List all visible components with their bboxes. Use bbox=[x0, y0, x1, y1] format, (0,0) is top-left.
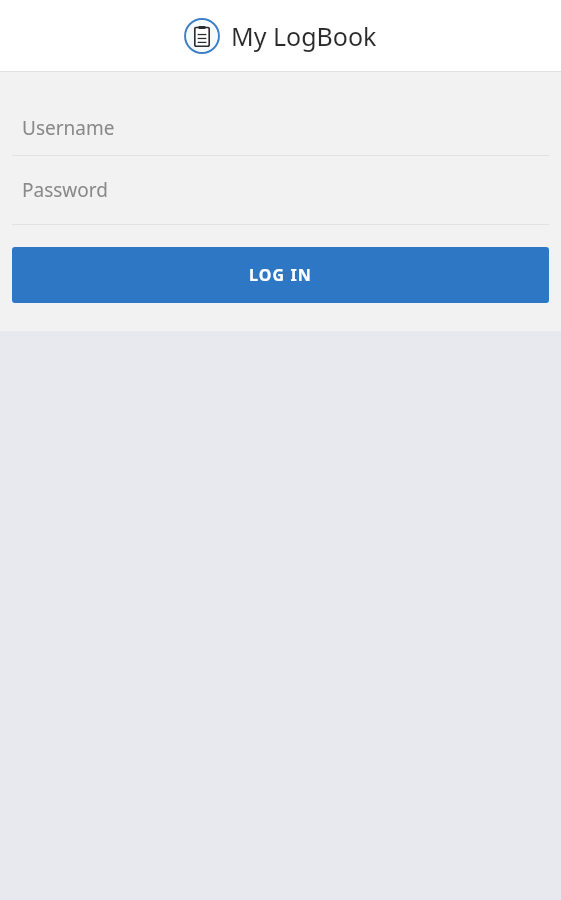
staticText: Password bbox=[22, 177, 108, 203]
staticText: LOG IN bbox=[249, 264, 312, 286]
staticText: My LogBook bbox=[231, 19, 377, 53]
button[interactable]: Password bbox=[0, 156, 561, 224]
button[interactable]: Username bbox=[0, 100, 561, 155]
button[interactable]: LOG IN bbox=[12, 247, 549, 303]
staticText: Username bbox=[22, 115, 115, 141]
button[interactable]: My LogBook app icon bbox=[184, 18, 220, 54]
